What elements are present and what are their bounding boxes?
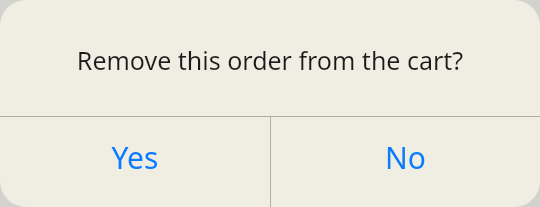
staticText: Yes (0, 137, 270, 178)
staticText: No (271, 137, 540, 178)
button[interactable]: Yes (0, 117, 270, 207)
button[interactable]: No (271, 117, 540, 207)
staticText: Remove this order from the cart? (18, 43, 522, 77)
